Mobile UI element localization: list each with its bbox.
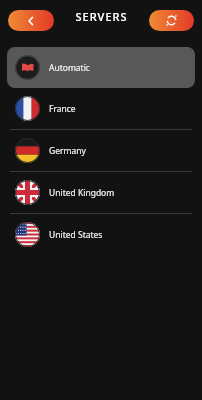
- staticText: France: [49, 103, 76, 115]
- button[interactable]: Back: [8, 10, 54, 31]
- button[interactable]: United States: [0, 214, 202, 255]
- staticText: Germany: [49, 145, 86, 157]
- button[interactable]: Germany: [0, 130, 202, 171]
- button[interactable]: France: [0, 88, 202, 129]
- button[interactable]: Refresh: [149, 10, 194, 31]
- button[interactable]: United Kingdom: [0, 172, 202, 213]
- button[interactable]: Automatic: [7, 47, 195, 88]
- staticText: United States: [49, 229, 103, 241]
- staticText: SERVERS: [75, 9, 128, 24]
- staticText: United Kingdom: [49, 187, 115, 199]
- staticText: Automatic: [49, 62, 90, 74]
